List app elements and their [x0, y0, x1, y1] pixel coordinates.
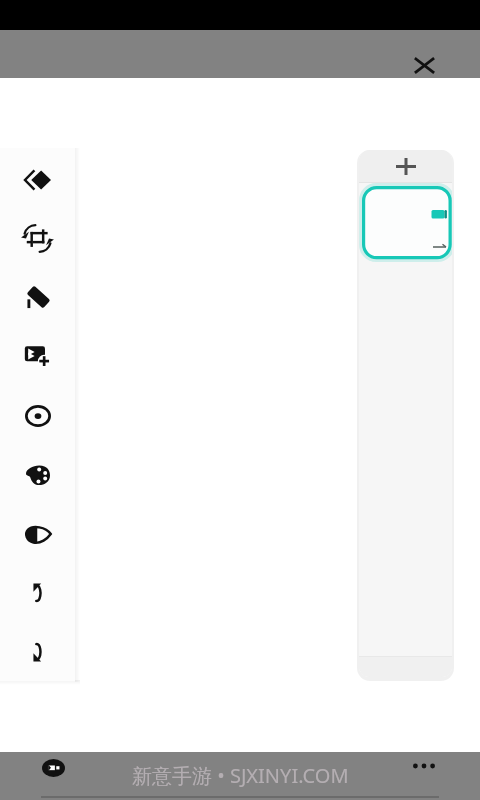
staticText: 新意手游 • SJXINYI.COM — [132, 762, 349, 789]
button[interactable]: Add frame — [359, 150, 452, 182]
button[interactable]: Eraser — [0, 268, 75, 327]
button[interactable]: Layers — [0, 150, 75, 209]
button[interactable]: Close — [403, 44, 445, 86]
button[interactable]: Brush size — [0, 386, 75, 445]
button[interactable]: Crop and rotate — [0, 209, 75, 268]
button[interactable]: Frame 1 — [362, 186, 452, 260]
button[interactable]: Color palette — [0, 445, 75, 504]
button[interactable]: Record — [38, 756, 68, 780]
button[interactable]: Redo — [0, 622, 75, 681]
button[interactable]: Add video — [0, 327, 75, 386]
button[interactable]: Opacity — [0, 504, 75, 563]
button[interactable]: Undo — [0, 563, 75, 622]
button[interactable]: More options — [406, 754, 442, 778]
